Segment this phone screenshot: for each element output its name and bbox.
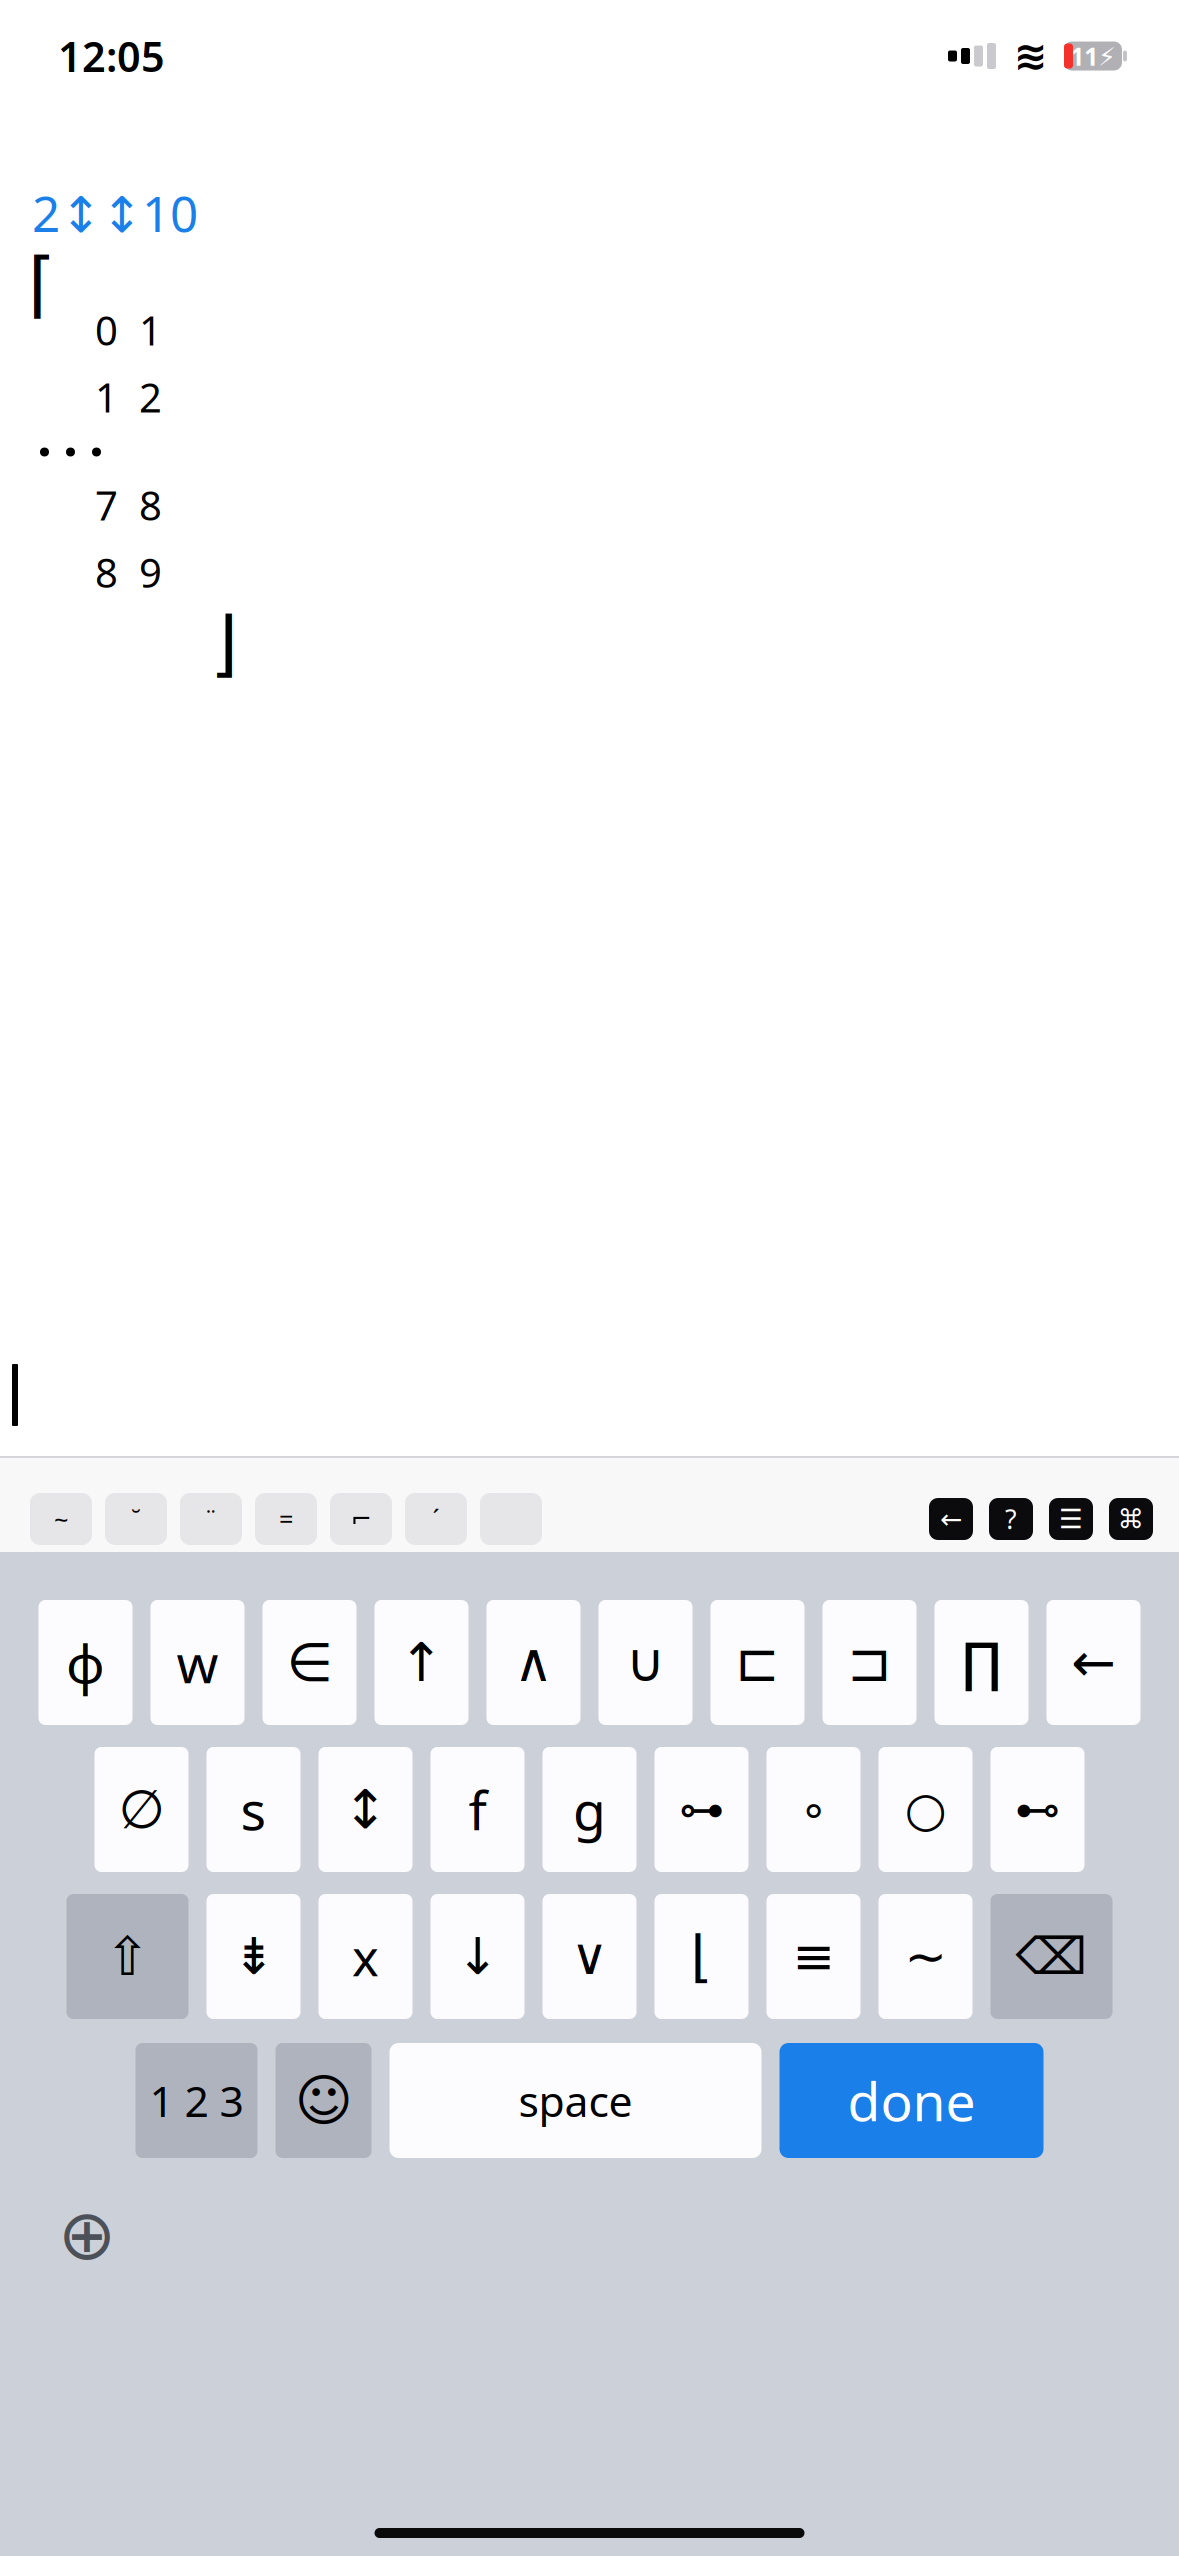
staticText: ⌐ bbox=[350, 1505, 371, 1533]
staticText: ⌊ bbox=[690, 1925, 712, 1988]
staticText: ≋ bbox=[1014, 33, 1048, 79]
staticText: ∏ bbox=[961, 1632, 1001, 1693]
staticText: ○ bbox=[904, 1782, 946, 1837]
staticText: ∧ bbox=[514, 1632, 553, 1693]
staticText: s bbox=[240, 1774, 266, 1845]
staticText: 7 bbox=[95, 478, 118, 532]
button[interactable]: ↑ bbox=[374, 1600, 468, 1725]
button[interactable]: 1 2 3 bbox=[135, 2043, 257, 2158]
staticText: ← bbox=[1071, 1632, 1116, 1693]
button[interactable]: ⊏ bbox=[710, 1600, 804, 1725]
button[interactable]: ∪ bbox=[598, 1600, 692, 1725]
staticText: ⊐ bbox=[847, 1632, 892, 1693]
staticText: f bbox=[468, 1774, 486, 1845]
button[interactable]: ⇧ bbox=[66, 1894, 188, 2019]
button[interactable]: s bbox=[206, 1747, 300, 1872]
staticText: 8 bbox=[139, 478, 162, 532]
button[interactable]: ˘ bbox=[105, 1493, 167, 1545]
staticText: 11⚡︎ bbox=[1070, 39, 1116, 73]
button[interactable]: = bbox=[255, 1493, 317, 1545]
button[interactable]: ↓ bbox=[430, 1894, 524, 2019]
staticText: g bbox=[573, 1774, 606, 1845]
staticText: ☰ bbox=[1059, 1504, 1083, 1534]
button[interactable]: ⌘ bbox=[1109, 1498, 1153, 1540]
staticText: 1 bbox=[139, 303, 162, 356]
button[interactable]: ⇟ bbox=[206, 1894, 300, 2019]
staticText: = bbox=[279, 1502, 293, 1536]
staticText: ˘ bbox=[131, 1502, 141, 1536]
button[interactable]: ∏ bbox=[934, 1600, 1028, 1725]
button[interactable]: ¨ bbox=[180, 1493, 242, 1545]
staticText: ∘ bbox=[799, 1784, 827, 1835]
button[interactable]: ⊶ bbox=[654, 1747, 748, 1872]
staticText: ⌫ bbox=[1015, 1928, 1087, 1985]
staticText: ∅ bbox=[118, 1779, 164, 1840]
button[interactable]: ∼ bbox=[878, 1894, 972, 2019]
button[interactable]: ∧ bbox=[486, 1600, 580, 1725]
staticText: ↕ bbox=[343, 1779, 388, 1840]
staticText: ? bbox=[1005, 1501, 1017, 1537]
staticText: ∨ bbox=[571, 1928, 608, 1985]
staticText: ⊕ bbox=[58, 2196, 116, 2274]
button[interactable]: ⊐ bbox=[822, 1600, 916, 1725]
button[interactable]: ⊷ bbox=[990, 1747, 1084, 1872]
staticText: 1 2 3 bbox=[149, 2072, 243, 2129]
button[interactable]: ≡ bbox=[766, 1894, 860, 2019]
button[interactable]: ϕ bbox=[38, 1600, 132, 1725]
staticText: 2↕↕10 bbox=[32, 180, 198, 245]
staticText: ← bbox=[940, 1504, 962, 1534]
button[interactable]: ´ bbox=[405, 1493, 467, 1545]
button[interactable]: Switch keyboard bbox=[44, 2192, 130, 2278]
staticText: 1 bbox=[95, 370, 118, 424]
button[interactable]: x bbox=[318, 1894, 412, 2019]
button[interactable]: ← bbox=[929, 1498, 973, 1540]
staticText: ∈ bbox=[286, 1632, 332, 1693]
button[interactable]: ⌐ bbox=[330, 1493, 392, 1545]
button[interactable]: ~ bbox=[30, 1493, 92, 1545]
staticText: ´ bbox=[432, 1502, 439, 1536]
button[interactable]: ☺ bbox=[275, 2043, 371, 2158]
button[interactable]: ∨ bbox=[542, 1894, 636, 2019]
staticText: 8 bbox=[95, 546, 118, 599]
button[interactable]: ∅ bbox=[94, 1747, 188, 1872]
staticText: ~ bbox=[54, 1502, 68, 1536]
staticText: 9 bbox=[139, 546, 162, 599]
staticText: ⌋ bbox=[210, 603, 238, 684]
button[interactable]: space bbox=[389, 2043, 761, 2158]
staticText: ☺ bbox=[294, 2069, 352, 2132]
staticText: done bbox=[847, 2065, 975, 2136]
staticText: ⌈ bbox=[28, 244, 56, 325]
staticText: ⊶ bbox=[679, 1784, 724, 1835]
staticText: ϕ bbox=[66, 1627, 105, 1698]
button[interactable]: ∈ bbox=[262, 1600, 356, 1725]
button[interactable]: ○ bbox=[878, 1747, 972, 1872]
button[interactable]: ? bbox=[989, 1498, 1033, 1540]
button[interactable]: ← bbox=[1046, 1600, 1140, 1725]
staticText: ∼ bbox=[904, 1928, 946, 1985]
button[interactable]: ☰ bbox=[1049, 1498, 1093, 1540]
staticText: x bbox=[352, 1923, 379, 1990]
button[interactable]: ⌊ bbox=[654, 1894, 748, 2019]
button[interactable]: g bbox=[542, 1747, 636, 1872]
staticText: 12:05 bbox=[58, 29, 165, 83]
staticText: ≡ bbox=[792, 1928, 834, 1985]
button[interactable]: w bbox=[150, 1600, 244, 1725]
staticText: ⇟ bbox=[232, 1928, 274, 1985]
staticText: space bbox=[518, 2072, 632, 2129]
staticText: ⊷ bbox=[1015, 1784, 1060, 1835]
staticText: w bbox=[176, 1627, 218, 1698]
button[interactable]: f bbox=[430, 1747, 524, 1872]
button[interactable]: ∘ bbox=[766, 1747, 860, 1872]
staticText: 0 bbox=[95, 303, 118, 356]
staticText: 2 bbox=[139, 370, 162, 424]
staticText: ⇧ bbox=[105, 1926, 150, 1987]
button[interactable]: done bbox=[779, 2043, 1043, 2158]
button[interactable]: ↕ bbox=[318, 1747, 412, 1872]
staticText: ↑ bbox=[399, 1632, 444, 1693]
staticText: ∪ bbox=[626, 1632, 665, 1693]
staticText: ⊏ bbox=[735, 1632, 780, 1693]
button[interactable]: ⌫ bbox=[990, 1894, 1112, 2019]
staticText: ⌘ bbox=[1117, 1504, 1144, 1534]
